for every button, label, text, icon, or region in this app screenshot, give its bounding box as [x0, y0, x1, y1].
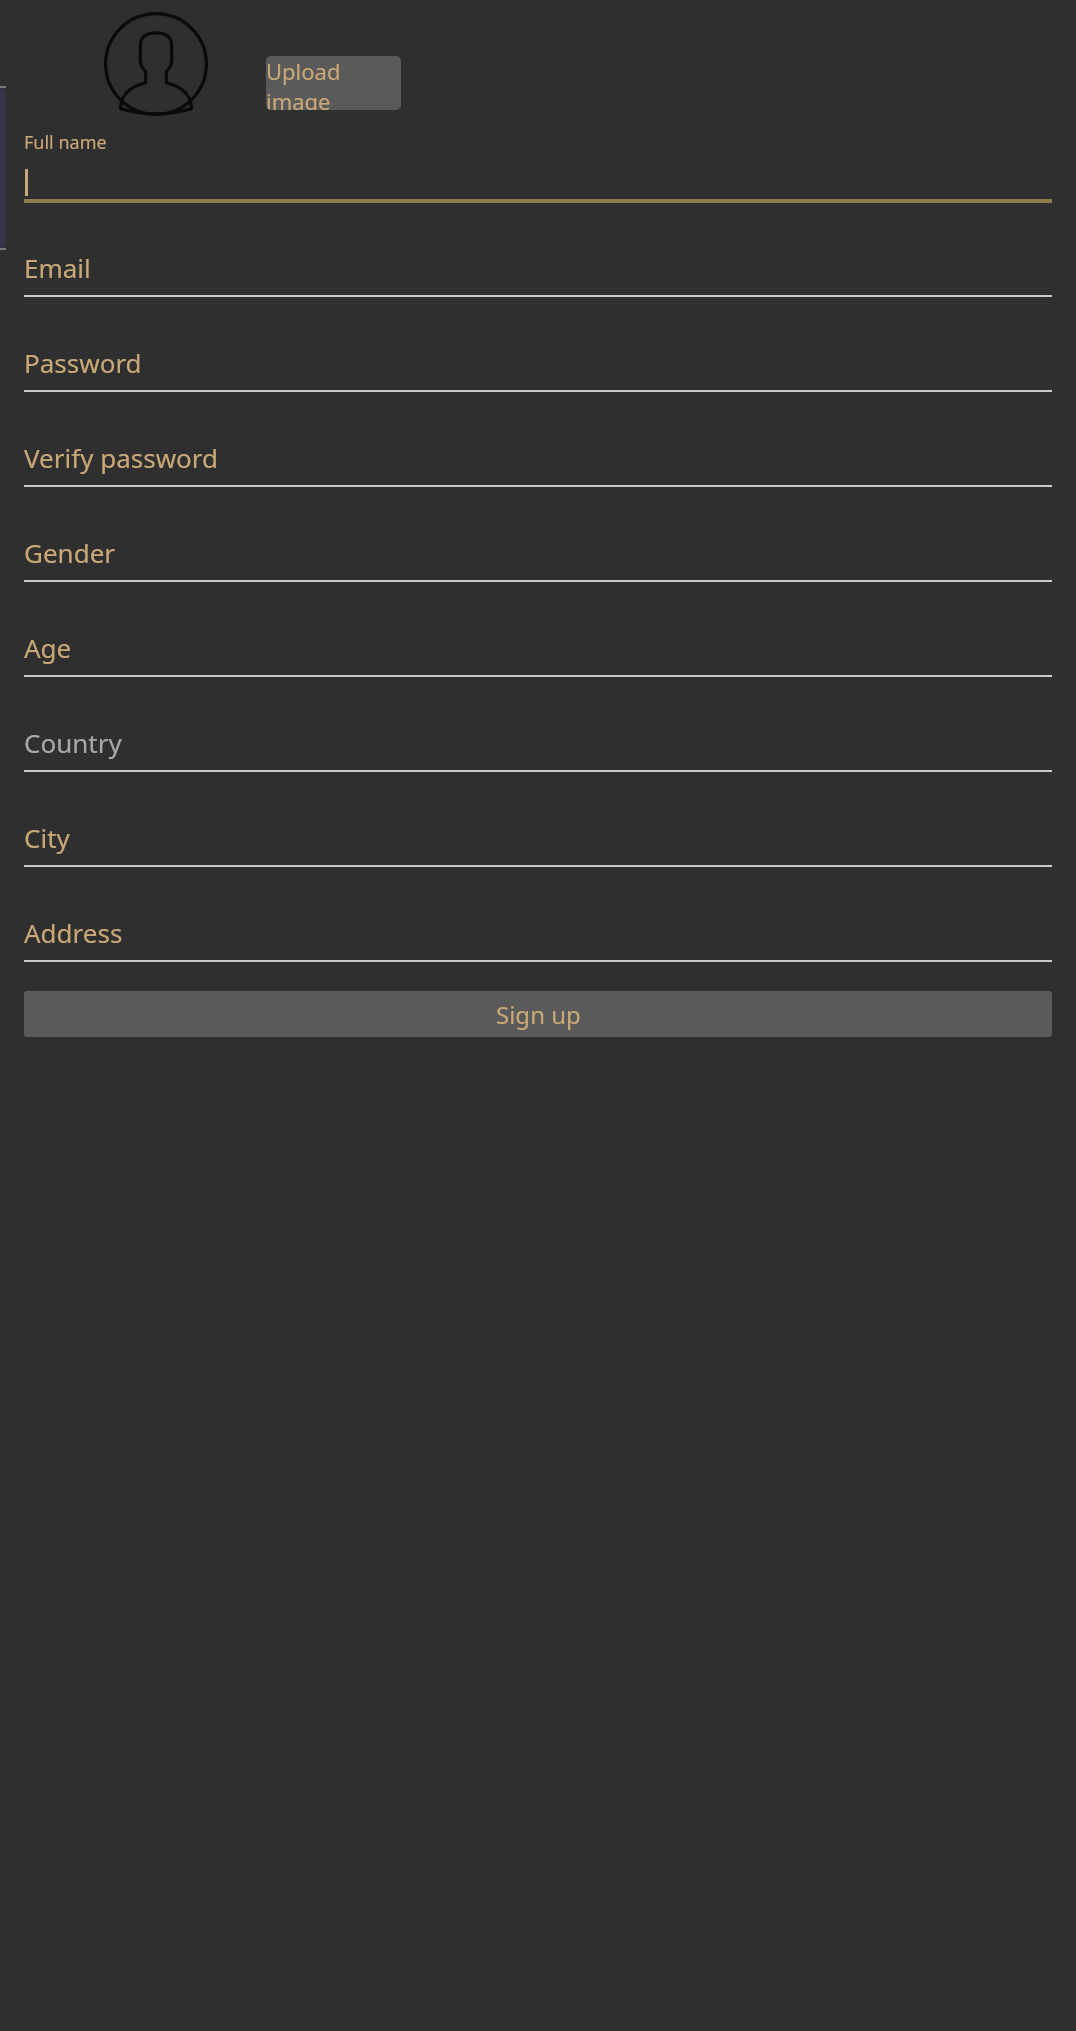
button[interactable]: Verify password [24, 440, 1052, 487]
button[interactable]: Upload image [266, 56, 401, 110]
staticText: Email [24, 250, 91, 285]
staticText: Age [24, 630, 72, 665]
button[interactable]: Address [24, 915, 1052, 962]
staticText: Address [24, 915, 123, 950]
button[interactable]: Age [24, 630, 1052, 677]
button[interactable]: Gender [24, 535, 1052, 582]
staticText: Verify password [24, 440, 219, 475]
staticText: City [24, 820, 70, 855]
staticText: Gender [24, 535, 116, 570]
button[interactable]: Country [24, 725, 1052, 772]
button[interactable]: Profile picture [104, 12, 208, 116]
button[interactable]: Sign up [24, 991, 1052, 1037]
staticText: Country [24, 725, 122, 760]
staticText: Sign up [496, 998, 581, 1031]
button[interactable]: Email [24, 250, 1052, 297]
button[interactable]: Full name [24, 130, 1052, 203]
staticText: Password [24, 345, 142, 380]
button[interactable]: City [24, 820, 1052, 867]
button[interactable]: Password [24, 345, 1052, 392]
staticText: Upload image [266, 56, 401, 110]
staticText: Full name [24, 130, 107, 155]
